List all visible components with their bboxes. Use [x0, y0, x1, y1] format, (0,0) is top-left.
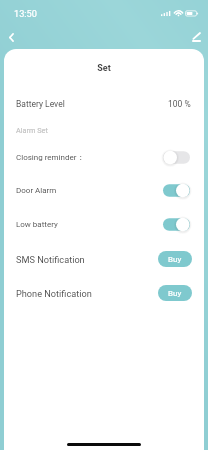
button[interactable]: Phone Notification	[4, 279, 204, 307]
staticText: Phone Notification	[16, 288, 92, 299]
button[interactable]: Buy	[158, 285, 192, 301]
button[interactable]: Battery Level	[4, 91, 204, 117]
button[interactable]: Switch on	[163, 183, 190, 198]
button[interactable]: Back	[1, 27, 21, 47]
staticText: Battery Level	[16, 99, 65, 109]
button[interactable]: Switch off	[163, 150, 190, 165]
button[interactable]: SMS Notification	[4, 245, 204, 273]
staticText: SMS Notification	[16, 254, 85, 265]
staticText: 100 %	[168, 99, 191, 109]
other: Status icons	[161, 9, 199, 17]
button[interactable]: Edit	[186, 27, 206, 47]
staticText: Low battery	[16, 220, 58, 229]
staticText: Closing reminder：	[16, 152, 85, 162]
button[interactable]: Door Alarm	[4, 176, 204, 204]
staticText: Set	[97, 63, 111, 74]
staticText: Alarm Set	[16, 126, 48, 135]
staticText: Buy	[168, 289, 182, 298]
button[interactable]: Closing reminder：	[4, 143, 204, 171]
staticText: 13:50	[14, 8, 37, 19]
staticText: Door Alarm	[16, 186, 57, 195]
button[interactable]: Buy	[158, 251, 192, 267]
staticText: Buy	[168, 255, 182, 264]
button[interactable]: Switch on	[163, 217, 190, 232]
button[interactable]: Low battery	[4, 210, 204, 238]
